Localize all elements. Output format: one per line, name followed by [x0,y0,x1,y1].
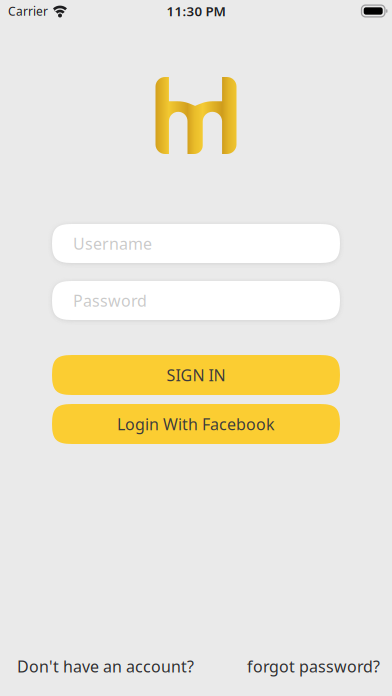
button[interactable]: SIGN IN [52,355,340,395]
staticText: forgot password? [247,656,380,677]
staticText: Carrier [8,3,48,19]
staticText: Login With Facebook [117,413,275,435]
staticText: Password [73,290,147,311]
staticText: SIGN IN [166,364,225,386]
button[interactable]: Login With Facebook [52,404,340,444]
staticText: Username [73,233,152,254]
button[interactable]: Don't have an account? [17,656,194,677]
button[interactable]: forgot password? [247,656,380,677]
staticText: 11:30 PM [166,2,225,20]
staticText: Don't have an account? [17,656,194,677]
